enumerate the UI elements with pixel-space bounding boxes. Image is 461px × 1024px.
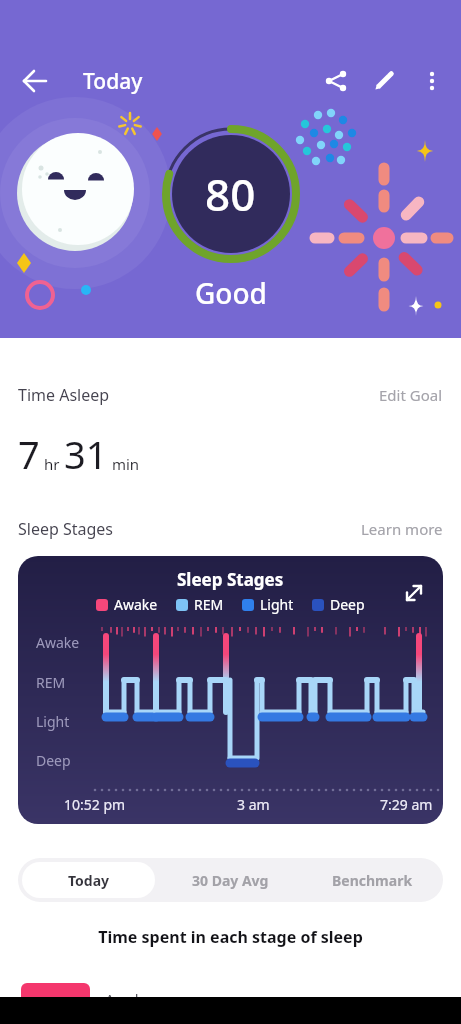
staticText: Deep (36, 751, 71, 770)
staticText: Sleep Stages (18, 518, 114, 540)
staticText: Today (68, 871, 110, 890)
button[interactable] (319, 64, 353, 98)
staticText: 7 (18, 428, 40, 480)
staticText: 80 (205, 164, 256, 224)
staticText: 30 Day Avg (192, 871, 269, 890)
staticText: Awake (36, 633, 80, 652)
staticText: Awake (105, 989, 152, 1009)
staticText: 7:29 am (380, 795, 433, 814)
staticText: Learn more (361, 519, 443, 539)
button[interactable] (18, 64, 52, 98)
staticText: Today (83, 67, 143, 96)
staticText: Edit Goal (379, 385, 443, 405)
button[interactable]: Edit Goal (379, 385, 443, 405)
button[interactable]: Learn more (361, 519, 443, 539)
staticText: min (108, 454, 140, 474)
staticText: Time spent in each stage of sleep (0, 926, 461, 948)
staticText: REM (36, 673, 66, 692)
button[interactable] (367, 64, 401, 98)
staticText: 31 (64, 428, 108, 480)
button[interactable]: Sleep Stages (18, 556, 443, 824)
staticText: Light (260, 595, 294, 614)
staticText: Benchmark (332, 871, 413, 890)
button[interactable]: Benchmark (301, 858, 443, 902)
button[interactable]: Today (22, 862, 155, 898)
staticText: 3 am (237, 795, 270, 814)
button[interactable] (415, 64, 449, 98)
staticText: Deep (330, 595, 365, 614)
staticText: Light (36, 712, 70, 731)
staticText: Time Asleep (18, 384, 110, 406)
staticText: hr (40, 454, 64, 474)
button[interactable]: 30 Day Avg (159, 858, 301, 902)
staticText: REM (194, 595, 224, 614)
staticText: Sleep Stages (177, 568, 284, 591)
staticText: Good (195, 274, 267, 312)
staticText: Awake (114, 595, 158, 614)
staticText: 10:52 pm (64, 795, 126, 814)
